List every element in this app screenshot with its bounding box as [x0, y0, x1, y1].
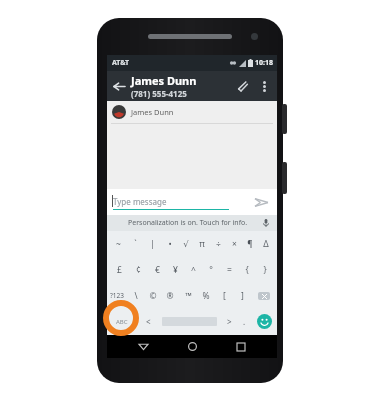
button[interactable]: }: [256, 257, 274, 283]
button[interactable]: Home: [179, 335, 205, 358]
staticText: [: [223, 290, 226, 302]
staticText: 10:18: [255, 58, 273, 68]
button[interactable]: ©: [144, 283, 161, 308]
button[interactable]: [: [215, 283, 233, 308]
button[interactable]: {: [238, 257, 256, 283]
button[interactable]: Voice input: [260, 217, 272, 229]
button[interactable]: Attach: [230, 74, 254, 98]
staticText: π: [199, 238, 205, 250]
button[interactable]: Back: [130, 335, 156, 358]
button[interactable]: =: [220, 257, 238, 283]
button[interactable]: Backspace: [251, 283, 277, 308]
button[interactable]: ABC: [107, 308, 137, 335]
staticText: .: [243, 316, 246, 327]
other: ABC key highlight: [103, 300, 139, 336]
staticText: ®: [166, 290, 174, 302]
button[interactable]: ?123: [107, 283, 127, 308]
staticText: }: [263, 264, 267, 276]
button[interactable]: <: [137, 308, 159, 335]
staticText: ¥: [173, 264, 178, 276]
button[interactable]: James Dunn: [131, 73, 230, 99]
button[interactable]: Δ: [258, 231, 274, 257]
button[interactable]: %: [197, 283, 215, 308]
button[interactable]: Personalization is on. Touch for info.: [128, 218, 248, 228]
staticText: ABC: [116, 318, 128, 326]
button[interactable]: >: [220, 308, 238, 335]
staticText: <: [146, 316, 151, 327]
staticText: ™: [185, 290, 192, 302]
staticText: ]: [241, 290, 244, 302]
staticText: ¶: [247, 238, 253, 250]
staticText: ¢: [136, 264, 141, 276]
staticText: ^: [191, 264, 196, 276]
button[interactable]: ]: [233, 283, 251, 308]
staticText: \: [134, 290, 138, 302]
button[interactable]: [159, 308, 220, 335]
button[interactable]: ™: [179, 283, 197, 308]
staticText: Δ: [263, 238, 269, 250]
button[interactable]: £: [110, 257, 129, 283]
staticText: ?123: [110, 291, 124, 300]
button[interactable]: π: [194, 231, 210, 257]
button[interactable]: \: [127, 283, 144, 308]
staticText: |: [150, 238, 155, 250]
staticText: AT&T: [112, 58, 130, 68]
staticText: =: [227, 264, 232, 276]
staticText: •: [168, 238, 172, 250]
button[interactable]: |: [144, 231, 161, 257]
staticText: {: [245, 264, 249, 276]
staticText: ~: [116, 238, 121, 250]
button[interactable]: ®: [161, 283, 179, 308]
button[interactable]: °: [202, 257, 220, 283]
button[interactable]: €: [148, 257, 166, 283]
staticText: James Dunn: [131, 73, 197, 88]
button[interactable]: Recents: [228, 335, 254, 358]
button[interactable]: ÷: [210, 231, 226, 257]
staticText: >: [227, 316, 232, 327]
button[interactable]: ¢: [129, 257, 148, 283]
button[interactable]: •: [161, 231, 178, 257]
staticText: ×: [232, 238, 237, 250]
staticText: €: [155, 264, 160, 276]
staticText: (781) 555-4125: [131, 88, 187, 99]
staticText: ÷: [216, 238, 221, 250]
button[interactable]: Type message: [113, 196, 245, 208]
staticText: √: [183, 239, 189, 249]
staticText: `: [134, 238, 137, 250]
staticText: ©: [149, 290, 157, 302]
button[interactable]: ¶: [242, 231, 258, 257]
staticText: °: [209, 264, 213, 276]
button[interactable]: Emoji: [251, 308, 277, 335]
staticText: Type message: [113, 196, 167, 207]
button[interactable]: ~: [110, 231, 127, 257]
button[interactable]: `: [127, 231, 144, 257]
button[interactable]: ¥: [166, 257, 184, 283]
button[interactable]: Back: [107, 74, 131, 98]
staticText: James Dunn: [131, 107, 174, 117]
staticText: £: [117, 264, 122, 276]
button[interactable]: More options: [254, 76, 274, 96]
button[interactable]: Send: [251, 192, 271, 212]
button[interactable]: .: [238, 308, 251, 335]
staticText: %: [202, 290, 210, 302]
button[interactable]: ×: [226, 231, 242, 257]
button[interactable]: ^: [184, 257, 202, 283]
button[interactable]: √: [178, 231, 194, 257]
